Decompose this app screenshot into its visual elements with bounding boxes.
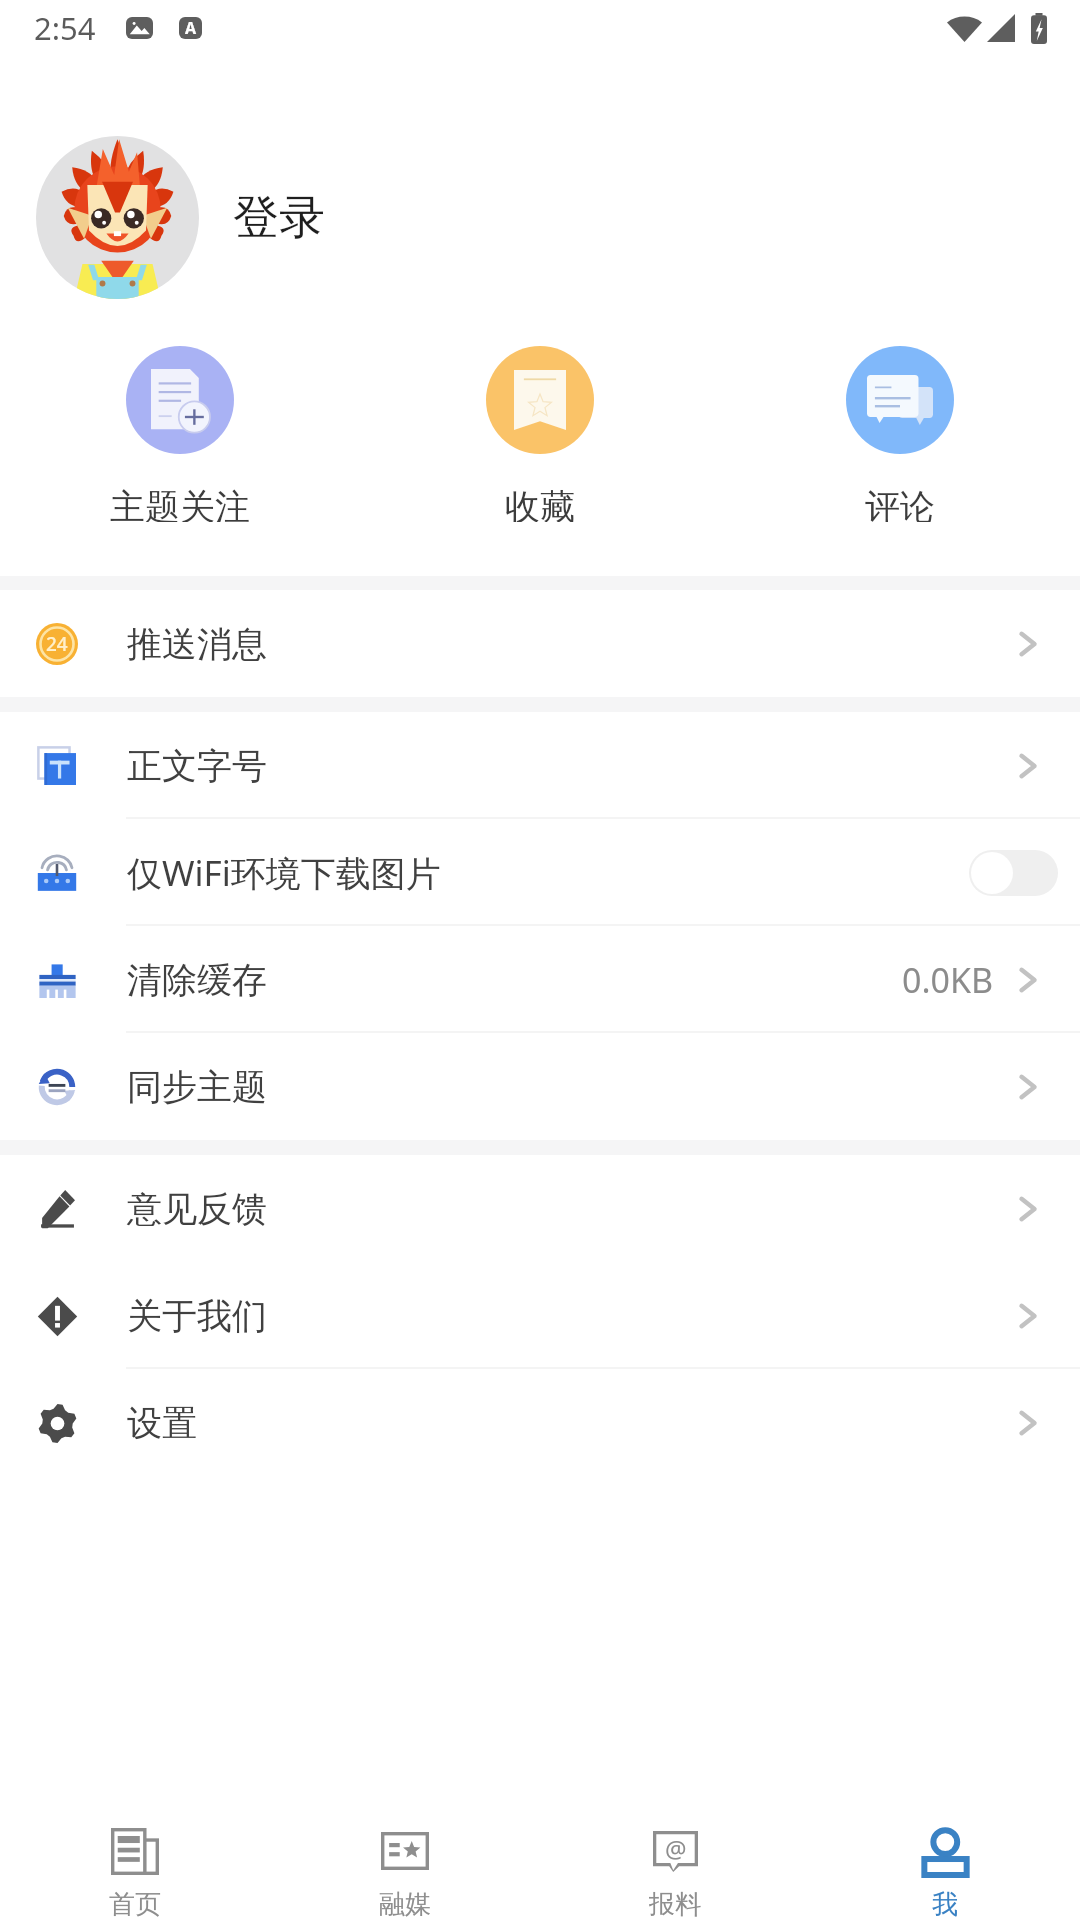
staticText: 同步主题 <box>127 1065 267 1109</box>
staticText: 清除缓存 <box>127 958 267 1002</box>
button[interactable]: 首页 <box>0 1800 270 1920</box>
staticText: 意见反馈 <box>127 1187 267 1231</box>
staticText: 关于我们 <box>127 1294 267 1338</box>
button[interactable]: 评论 <box>720 346 1080 522</box>
staticText: 我 <box>932 1888 958 1920</box>
button[interactable]: 意见反馈 <box>0 1155 1080 1262</box>
staticText: 正文字号 <box>127 744 267 788</box>
staticText: 主题关注 <box>110 485 250 522</box>
staticText: 首页 <box>109 1888 161 1920</box>
button[interactable]: 清除缓存 <box>0 926 1080 1033</box>
button[interactable]: 正文字号 <box>0 712 1080 819</box>
staticText: 登录 <box>233 189 325 247</box>
staticText: 0.0KB <box>902 957 994 1003</box>
staticText: 推送消息 <box>127 622 267 666</box>
button[interactable]: 关于我们 <box>0 1262 1080 1369</box>
staticText: 报料 <box>649 1888 701 1920</box>
staticText: 收藏 <box>505 485 575 522</box>
staticText: @ <box>665 1832 687 1865</box>
staticText: 24 <box>46 631 68 657</box>
button[interactable]: 设置 <box>0 1369 1080 1476</box>
button[interactable]: 我 <box>810 1800 1080 1920</box>
staticText: 设置 <box>127 1401 197 1445</box>
staticText: 评论 <box>865 485 935 522</box>
button[interactable]: 24 <box>0 590 1080 697</box>
button[interactable]: 收藏 <box>360 346 720 522</box>
button[interactable]: Toggle WiFi only image download <box>969 850 1058 896</box>
staticText: 融媒 <box>379 1888 431 1920</box>
staticText: 2:54 <box>34 7 96 49</box>
button[interactable]: 融媒 <box>270 1800 540 1920</box>
button[interactable]: 主题关注 <box>0 346 360 522</box>
button[interactable]: 仅WiFi环境下载图片 <box>0 819 1080 926</box>
staticText: A <box>185 17 197 39</box>
button[interactable]: 登录 Sign in <box>0 136 1080 299</box>
staticText: 仅WiFi环境下载图片 <box>127 849 441 897</box>
button[interactable]: 同步主题 <box>0 1033 1080 1140</box>
button[interactable]: @ <box>540 1800 810 1920</box>
